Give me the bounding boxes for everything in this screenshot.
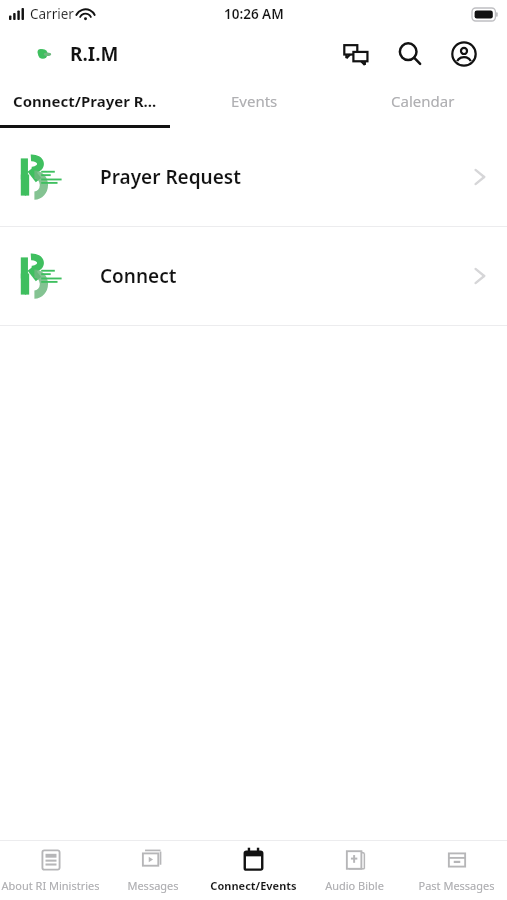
button[interactable]: Account bbox=[443, 33, 485, 75]
staticText: Prayer Request bbox=[100, 164, 241, 190]
button[interactable]: Connect bbox=[0, 227, 507, 325]
staticText: R.I.M bbox=[70, 41, 119, 67]
button[interactable]: Prayer Request bbox=[0, 128, 507, 226]
staticText: About RI Ministries bbox=[1, 878, 100, 893]
button[interactable]: Search bbox=[389, 33, 431, 75]
button[interactable]: Audio Bible bbox=[304, 841, 405, 900]
staticText: Events bbox=[231, 91, 278, 111]
staticText: Connect bbox=[100, 263, 177, 289]
button[interactable]: Past Messages bbox=[406, 841, 507, 900]
button[interactable]: Messages bbox=[102, 841, 203, 900]
button[interactable]: Connect/Events bbox=[203, 841, 304, 900]
staticText: Past Messages bbox=[418, 878, 495, 893]
button[interactable]: Events bbox=[170, 80, 339, 128]
button[interactable]: Chats bbox=[335, 33, 377, 75]
button[interactable]: About RI Ministries bbox=[0, 841, 101, 900]
staticText: Messages bbox=[127, 878, 179, 893]
staticText: Calendar bbox=[391, 91, 455, 111]
staticText: 10:26 AM bbox=[224, 5, 284, 23]
staticText: Carrier bbox=[30, 5, 74, 23]
button[interactable]: Connect/Prayer R... bbox=[0, 80, 170, 128]
staticText: Audio Bible bbox=[325, 878, 384, 893]
button[interactable]: Calendar bbox=[339, 80, 507, 128]
staticText: Connect/Events bbox=[210, 878, 297, 893]
staticText: Connect/Prayer R... bbox=[13, 91, 157, 111]
